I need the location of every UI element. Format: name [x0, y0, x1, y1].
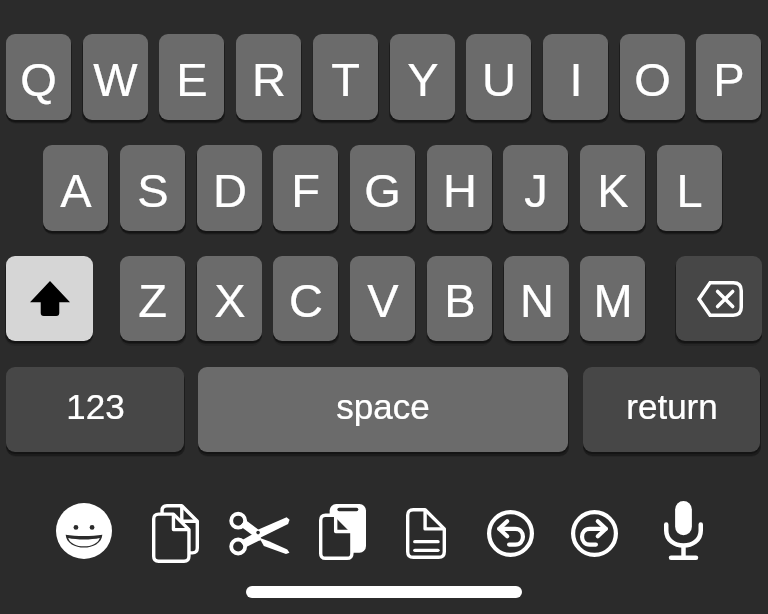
staticText: N: [520, 274, 554, 327]
button[interactable]: Z: [120, 256, 185, 341]
staticText: T: [331, 53, 360, 106]
staticText: S: [137, 164, 169, 217]
button[interactable]: J: [503, 145, 568, 231]
button[interactable]: C: [273, 256, 338, 341]
staticText: return: [626, 387, 718, 426]
button[interactable]: V: [350, 256, 415, 341]
button[interactable]: M: [580, 256, 645, 341]
staticText: P: [713, 53, 745, 106]
button[interactable]: O: [620, 34, 685, 120]
button[interactable]: space: [198, 367, 568, 452]
button[interactable]: Paste: [309, 499, 375, 565]
staticText: L: [676, 164, 703, 217]
button[interactable]: X: [197, 256, 262, 341]
staticText: X: [214, 274, 246, 327]
staticText: 123: [66, 387, 125, 426]
button[interactable]: E: [159, 34, 224, 120]
button[interactable]: Y: [390, 34, 455, 120]
button[interactable]: L: [657, 145, 722, 231]
staticText: C: [289, 274, 323, 327]
staticText: A: [60, 164, 92, 217]
button[interactable]: Document: [393, 500, 459, 566]
staticText: J: [524, 164, 548, 217]
button[interactable]: Backspace: [676, 256, 762, 341]
button[interactable]: R: [236, 34, 301, 120]
button[interactable]: D: [197, 145, 262, 231]
button[interactable]: K: [580, 145, 645, 231]
staticText: Q: [20, 53, 57, 106]
button[interactable]: Undo: [477, 500, 543, 566]
button[interactable]: A: [43, 145, 108, 231]
button[interactable]: B: [427, 256, 492, 341]
staticText: U: [482, 53, 516, 106]
button[interactable]: Emoji: [51, 498, 117, 564]
staticText: K: [597, 164, 629, 217]
button[interactable]: W: [83, 34, 148, 120]
button[interactable]: G: [350, 145, 415, 231]
staticText: R: [252, 53, 286, 106]
staticText: H: [443, 164, 477, 217]
staticText: M: [593, 274, 633, 327]
button[interactable]: H: [427, 145, 492, 231]
button[interactable]: Shift: [6, 256, 93, 341]
button[interactable]: P: [696, 34, 761, 120]
button[interactable]: Microphone: [650, 497, 716, 563]
button[interactable]: F: [273, 145, 338, 231]
staticText: space: [336, 387, 430, 426]
button[interactable]: Copy: [142, 500, 208, 566]
staticText: D: [213, 164, 247, 217]
button[interactable]: N: [504, 256, 569, 341]
staticText: E: [176, 53, 208, 106]
staticText: V: [367, 274, 399, 327]
staticText: F: [291, 164, 320, 217]
staticText: I: [569, 53, 583, 106]
button[interactable]: S: [120, 145, 185, 231]
button[interactable]: I: [543, 34, 608, 120]
staticText: B: [444, 274, 476, 327]
staticText: G: [364, 164, 401, 217]
staticText: Y: [407, 53, 439, 106]
button[interactable]: Redo: [561, 500, 627, 566]
staticText: O: [634, 53, 671, 106]
staticText: Z: [138, 274, 167, 327]
button[interactable]: Q: [6, 34, 71, 120]
staticText: W: [93, 53, 138, 106]
button[interactable]: T: [313, 34, 378, 120]
button[interactable]: return: [583, 367, 760, 452]
button[interactable]: 123: [6, 367, 184, 452]
button[interactable]: Cut: [227, 501, 293, 567]
button[interactable]: U: [466, 34, 531, 120]
